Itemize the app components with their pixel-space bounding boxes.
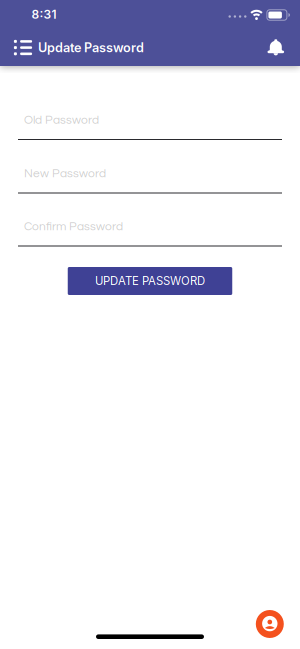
button[interactable]: New Password [18,159,282,193]
button[interactable]: Confirm Password [18,212,282,246]
button[interactable] [264,37,288,59]
staticText: New Password [24,167,106,180]
staticText: Update Password [38,40,144,55]
button[interactable] [256,610,284,638]
staticText: UPDATE PASSWORD [95,274,205,288]
button[interactable]: Old Password [18,106,282,140]
staticText: Confirm Password [24,220,123,233]
staticText: 8:31 [31,7,56,22]
button[interactable]: UPDATE PASSWORD [68,267,232,295]
staticText: Old Password [24,114,99,126]
button[interactable] [12,38,34,58]
